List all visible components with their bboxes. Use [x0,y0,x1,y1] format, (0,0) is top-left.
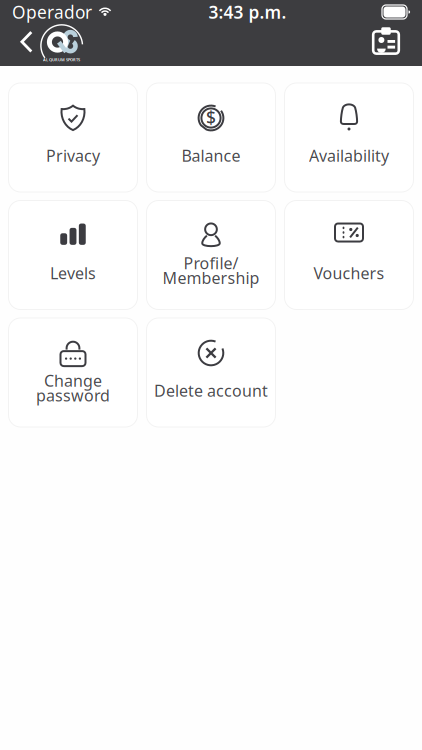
staticText: Profile/ [183,252,238,274]
button[interactable]: $ [146,83,275,192]
staticText: Vouchers [313,262,384,284]
button[interactable]: Profile/ [146,200,275,309]
button[interactable]: Levels [8,200,137,309]
staticText: Levels [50,262,96,284]
button[interactable]: Back [13,23,39,61]
button[interactable]: Availability [284,83,413,192]
staticText: Delete account [154,380,268,401]
staticText: Change [44,370,102,391]
button[interactable]: Membership card [369,23,403,61]
staticText: Membership [162,267,259,288]
staticText: Privacy [46,145,100,166]
button[interactable]: Delete account [146,318,275,427]
button[interactable]: Change [8,318,137,427]
staticText: Balance [181,145,240,166]
button[interactable]: Privacy [8,83,137,192]
staticText: Availability [309,145,389,166]
staticText: AL QURUM SPORTS [43,57,80,62]
staticText: password [36,385,110,406]
staticText: Operador [12,0,92,23]
staticText: $ [206,106,216,129]
staticText: 3:43 p.m. [208,0,286,23]
button[interactable]: Al Qurum Sports home [39,24,83,62]
button[interactable]: Vouchers [284,200,413,309]
